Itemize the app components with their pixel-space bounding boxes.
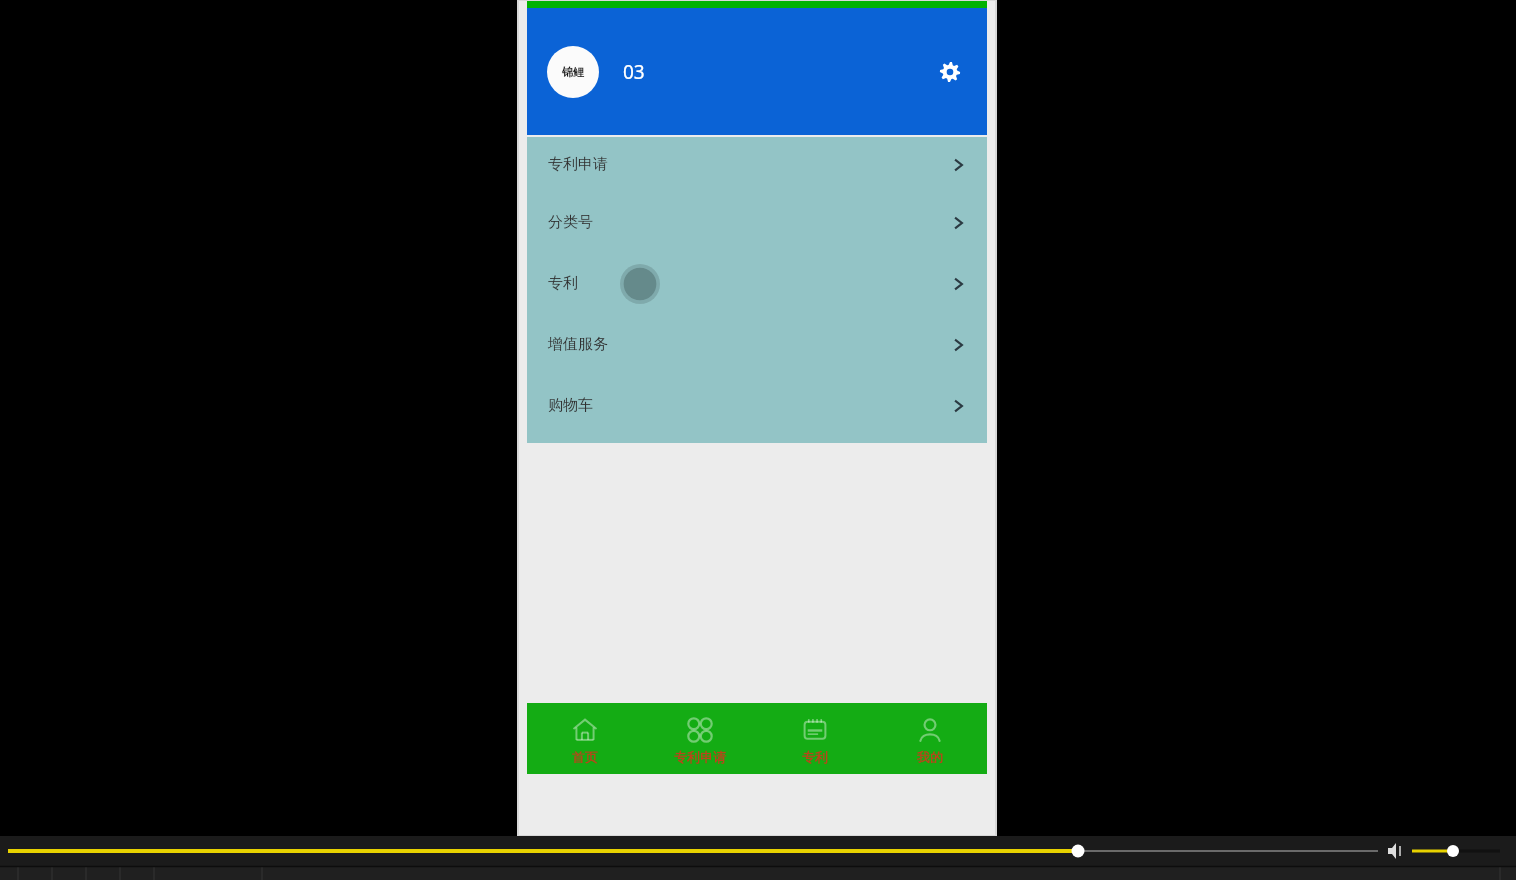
button[interactable]: 首页: [527, 703, 642, 774]
button[interactable]: 我的: [872, 703, 987, 774]
staticText: 03: [623, 59, 645, 85]
staticText: 购物车: [548, 396, 593, 415]
button[interactable]: 购物车: [527, 375, 987, 436]
button[interactable]: Settings: [933, 55, 967, 89]
button[interactable]: 专利申请: [642, 703, 757, 774]
button[interactable]: 锦鲤: [547, 46, 599, 98]
staticText: 首页: [572, 749, 598, 765]
button[interactable]: 专利: [527, 253, 987, 314]
button[interactable]: 专利申请: [527, 137, 987, 192]
staticText: 专利: [802, 749, 828, 765]
staticText: 专利: [548, 274, 578, 293]
staticText: 增值服务: [548, 335, 608, 354]
staticText: 专利申请: [548, 155, 608, 174]
staticText: 分类号: [548, 213, 593, 232]
button[interactable]: 专利: [757, 703, 872, 774]
staticText: 我的: [917, 749, 943, 765]
staticText: 专利申请: [674, 749, 726, 765]
button[interactable]: 分类号: [527, 192, 987, 253]
button[interactable]: 增值服务: [527, 314, 987, 375]
staticText: 锦鲤: [562, 65, 584, 79]
